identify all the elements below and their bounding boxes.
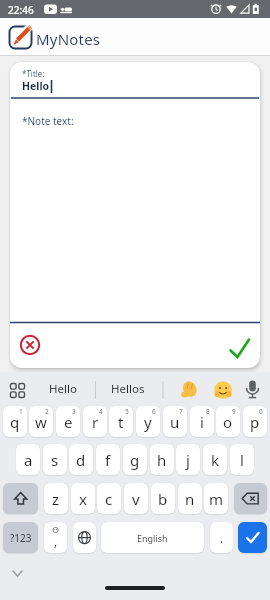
button[interactable]: q: [3, 406, 27, 437]
staticText: j: [186, 450, 190, 470]
button[interactable]: y: [136, 406, 160, 437]
button[interactable]: English: [101, 522, 204, 553]
button[interactable]: s: [43, 444, 67, 475]
button[interactable]: [241, 377, 265, 403]
button[interactable]: p: [243, 406, 267, 437]
staticText: p: [250, 412, 260, 432]
staticText: k: [211, 450, 220, 470]
staticText: 5: [125, 407, 129, 416]
staticText: f: [105, 450, 111, 470]
staticText: 0: [259, 407, 263, 416]
button[interactable]: [234, 483, 267, 514]
button[interactable]: [44, 522, 67, 553]
button[interactable]: [177, 377, 202, 403]
button[interactable]: i: [190, 406, 214, 437]
staticText: d: [76, 450, 86, 470]
staticText: 1: [19, 407, 23, 416]
staticText: 3: [72, 407, 76, 416]
button[interactable]: u: [163, 406, 187, 437]
button[interactable]: m: [204, 483, 228, 514]
button[interactable]: Hellos: [98, 376, 158, 402]
button[interactable]: l: [230, 444, 254, 475]
staticText: Hello: [22, 79, 50, 93]
button[interactable]: [3, 483, 38, 514]
staticText: r: [92, 412, 99, 432]
staticText: x: [79, 489, 87, 509]
staticText: 8: [206, 407, 210, 416]
button[interactable]: v: [124, 483, 148, 514]
staticText: ?123: [10, 531, 32, 545]
button[interactable]: Hello: [36, 376, 90, 402]
staticText: i: [200, 412, 204, 432]
staticText: z: [52, 489, 60, 509]
button[interactable]: f: [96, 444, 120, 475]
button[interactable]: [238, 522, 267, 553]
button[interactable]: [73, 522, 96, 553]
button[interactable]: .: [210, 522, 233, 553]
button[interactable]: [18, 333, 42, 357]
button[interactable]: b: [151, 483, 175, 514]
staticText: t: [118, 412, 124, 432]
staticText: *Title:: [22, 68, 45, 79]
staticText: u: [170, 412, 180, 432]
staticText: w: [35, 412, 47, 432]
staticText: Hello: [49, 381, 77, 397]
staticText: 4: [99, 407, 103, 416]
button[interactable]: x: [71, 483, 95, 514]
staticText: 6: [152, 407, 156, 416]
staticText: s: [51, 450, 59, 470]
staticText: e: [64, 412, 73, 432]
staticText: ,: [54, 533, 58, 549]
staticText: l: [240, 450, 244, 470]
staticText: o: [223, 412, 233, 432]
button[interactable]: [226, 334, 254, 362]
staticText: v: [132, 489, 140, 509]
staticText: a: [24, 450, 33, 470]
staticText: 7: [179, 407, 183, 416]
button[interactable]: e: [56, 406, 80, 437]
button[interactable]: [7, 565, 28, 583]
button[interactable]: h: [150, 444, 174, 475]
staticText: g: [130, 450, 140, 470]
staticText: MyNotes: [36, 29, 101, 49]
button[interactable]: z: [44, 483, 68, 514]
button[interactable]: ?123: [3, 522, 38, 553]
staticText: y: [144, 412, 152, 432]
staticText: *Note text:: [22, 114, 74, 128]
staticText: Hellos: [111, 381, 145, 397]
button[interactable]: g: [123, 444, 147, 475]
staticText: m: [209, 489, 224, 509]
button[interactable]: a: [16, 444, 40, 475]
staticText: 22:46: [8, 3, 34, 17]
button[interactable]: o: [216, 406, 240, 437]
button[interactable]: d: [69, 444, 93, 475]
button[interactable]: [211, 377, 236, 403]
staticText: c: [105, 489, 113, 509]
button[interactable]: n: [178, 483, 202, 514]
button[interactable]: [4, 378, 30, 402]
button[interactable]: k: [203, 444, 227, 475]
button[interactable]: j: [176, 444, 200, 475]
staticText: b: [158, 489, 168, 509]
button[interactable]: w: [29, 406, 53, 437]
staticText: q: [10, 412, 20, 432]
staticText: English: [137, 532, 168, 544]
staticText: .: [220, 530, 224, 546]
staticText: n: [185, 489, 195, 509]
button[interactable]: t: [109, 406, 133, 437]
staticText: 9: [232, 407, 236, 416]
staticText: h: [157, 450, 167, 470]
staticText: 2: [45, 407, 49, 416]
button[interactable]: r: [83, 406, 107, 437]
button[interactable]: c: [97, 483, 121, 514]
